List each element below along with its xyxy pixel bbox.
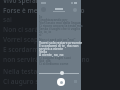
staticText: Vorrei solo restare presente	[39, 41, 83, 45]
button[interactable]: More options	[73, 8, 77, 12]
staticText: Io	[39, 15, 43, 19]
staticText: Singhiozzando per	[39, 18, 68, 22]
staticText: Ci scordiamo come	[39, 62, 69, 66]
staticText: Ci auguro sogni suoi	[3, 77, 68, 86]
staticText: Nella	[39, 50, 48, 54]
staticText: Ci riparo ancora la testa mia	[39, 24, 83, 28]
button[interactable]: Seek bar	[39, 70, 79, 76]
staticText: sai	[3, 15, 12, 24]
staticText: Io, io, io	[39, 30, 52, 34]
staticText: Non ci sarà più un "noi"	[3, 25, 78, 34]
staticText: Vivo speranze, mi cubo	[3, 0, 76, 5]
staticText: Non ci sarà più un "noi"	[39, 38, 76, 42]
staticText: non servirà a niente, no, no	[3, 55, 90, 64]
button[interactable]: Play	[57, 78, 65, 86]
staticText: Forse è meglio i ricordi, lo	[3, 6, 85, 15]
staticText: E scordarmi di te, ma	[3, 45, 70, 54]
staticText: sì	[39, 33, 42, 37]
staticText: Ci auguro sogni suoi	[39, 56, 71, 60]
staticText: Senza i luoghi che ti voglio	[39, 27, 81, 31]
staticText: E scordarmi di te, ma non	[39, 44, 79, 48]
staticText: Già, già	[39, 59, 51, 63]
staticText: Vorrei scappare lontano	[3, 35, 79, 44]
staticText: Nella testa solo i tuoi	[3, 67, 70, 76]
staticText: A niente, no, no	[39, 53, 64, 57]
staticText: Non lascio mai dalla lingua	[39, 21, 81, 25]
staticText: servirà a niente	[39, 47, 64, 51]
